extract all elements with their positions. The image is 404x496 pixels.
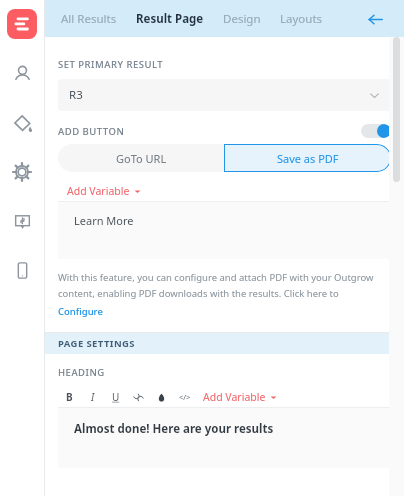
button[interactable]: Save as PDF [224,144,391,172]
button[interactable]: Italic [81,387,104,407]
button[interactable]: Settings [8,158,36,186]
button[interactable]: Back [360,4,390,34]
staticText: All Results [61,11,117,27]
button[interactable]: All Results [59,5,119,33]
button[interactable]: Results [7,9,37,39]
staticText: ADD BUTTON [58,125,125,138]
button[interactable]: Design [221,5,263,33]
staticText: Result Page [136,11,204,27]
button[interactable]: Text color [150,387,173,407]
staticText: Save as PDF [277,151,339,166]
button[interactable]: Configure [58,305,103,318]
button[interactable]: Result Page [134,5,206,33]
button[interactable]: Layouts [278,5,325,33]
staticText: Layouts [280,11,323,27]
staticText: I [91,390,95,404]
button[interactable]: Pricing [8,207,36,235]
staticText: Learn More [74,213,134,228]
staticText: SET PRIMARY RESULT [58,58,164,71]
button[interactable]: Source code [173,387,196,407]
staticText: R3 [69,87,83,103]
button[interactable]: Preview device [8,256,36,284]
button[interactable]: Add button toggle [361,124,391,138]
button[interactable]: GoTo URL [58,144,224,172]
staticText: GoTo URL [116,151,167,166]
button[interactable]: Add Variable [58,181,391,201]
button[interactable]: Insert link [127,387,150,407]
button[interactable]: Bold [58,387,81,407]
staticText: Configure [58,305,103,318]
staticText: HEADING [58,366,105,379]
staticText: Add Variable [203,390,266,404]
staticText: Almost done! Here are your results [74,421,274,437]
staticText: U [112,390,120,404]
staticText: B [66,390,73,404]
staticText: Design [223,11,261,27]
staticText: Add Variable [67,184,130,198]
staticText: PAGE SETTINGS [58,337,135,350]
staticText: content, enabling PDF downloads with the… [58,287,339,300]
button[interactable]: R3 [58,79,391,111]
staticText: </> [179,392,191,402]
button[interactable]: Theme [8,109,36,137]
button[interactable]: Add Variable [201,387,279,407]
staticText: With this feature, you can configure and… [58,271,374,284]
button[interactable]: Account [8,60,36,88]
button[interactable]: Underline [104,387,127,407]
